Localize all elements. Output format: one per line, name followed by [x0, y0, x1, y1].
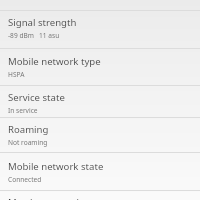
button[interactable]: Service state — [0, 86, 200, 117]
button[interactable]: Signal strength — [0, 11, 200, 48]
staticText: My phone number — [8, 196, 92, 200]
button[interactable]: Mobile network state — [0, 153, 200, 190]
staticText: Service state — [8, 91, 65, 104]
staticText: Connected — [8, 175, 42, 184]
staticText: Mobile network state — [8, 160, 104, 173]
staticText: In service — [8, 106, 38, 115]
staticText: HSPA — [8, 70, 25, 79]
button[interactable]: Mobile network type — [0, 49, 200, 85]
button[interactable]: Roaming — [0, 118, 200, 152]
staticText: Mobile network type — [8, 55, 101, 68]
staticText: Signal strength — [8, 16, 77, 29]
staticText: -89 dBm 11 asu — [8, 31, 60, 40]
staticText: Roaming — [8, 123, 49, 136]
staticText: Not roaming — [8, 138, 48, 147]
button[interactable]: My phone number — [0, 191, 200, 200]
